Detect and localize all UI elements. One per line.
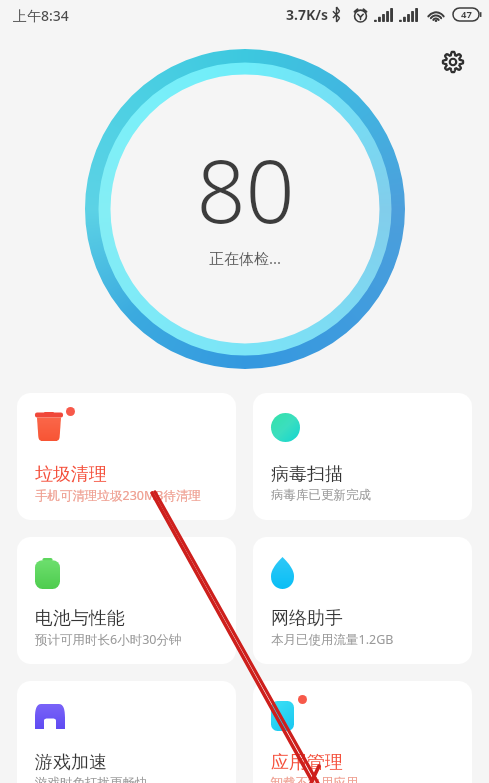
button[interactable]: Settings <box>431 40 475 84</box>
button[interactable]: 垃圾清理 <box>17 393 236 520</box>
staticText: 游戏加速 <box>35 751 107 774</box>
staticText: 电池与性能 <box>35 607 125 630</box>
button[interactable]: 电池与性能 <box>17 537 236 664</box>
button[interactable]: 病毒扫描 <box>253 393 472 520</box>
staticText: 手机可清理垃圾230MB待清理 <box>35 487 201 504</box>
staticText: 网络助手 <box>271 607 343 630</box>
staticText: 应用管理 <box>271 751 343 774</box>
staticText: 80 <box>196 131 295 248</box>
staticText: 3.7K/s <box>286 5 329 24</box>
staticText: 预计可用时长6小时30分钟 <box>35 631 182 648</box>
staticText: 病毒库已更新完成 <box>271 487 371 503</box>
staticText: 正在体检... <box>209 248 282 268</box>
staticText: 垃圾清理 <box>35 463 107 486</box>
button[interactable]: 游戏加速 <box>17 681 236 783</box>
staticText: 病毒扫描 <box>271 463 343 486</box>
button[interactable]: 网络助手 <box>253 537 472 664</box>
button[interactable]: 应用管理 <box>253 681 472 783</box>
staticText: 47 <box>461 8 472 21</box>
staticText: 卸载不常用应用 <box>271 775 359 783</box>
staticText: 游戏时免打扰更畅快 <box>35 775 148 783</box>
staticText: 本月已使用流量1.2GB <box>271 631 394 648</box>
staticText: 上午8:34 <box>13 6 69 25</box>
